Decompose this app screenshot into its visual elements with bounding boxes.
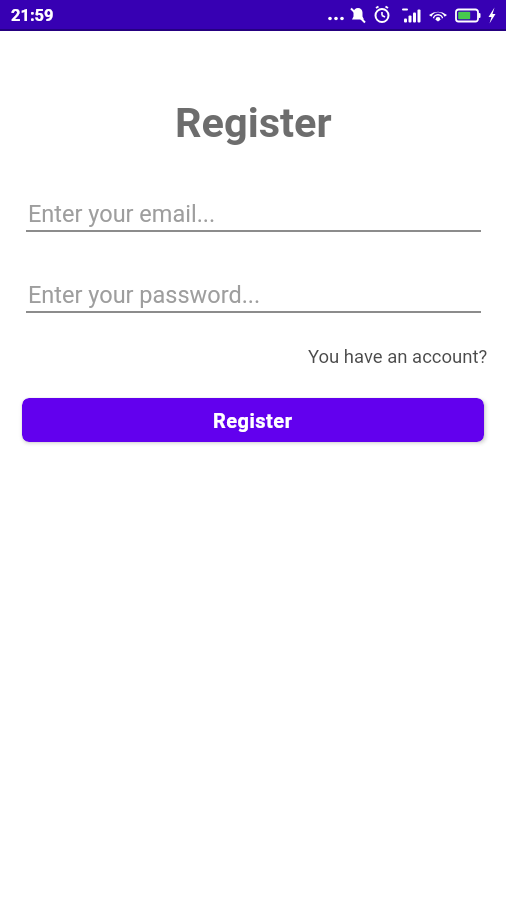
staticText: Enter your password... — [28, 281, 261, 309]
button[interactable]: Register — [22, 398, 484, 442]
staticText: 21:59 — [11, 6, 54, 25]
staticText: Enter your email... — [28, 200, 216, 228]
button[interactable]: Enter your password... — [26, 281, 481, 313]
button[interactable]: Enter your email... — [26, 200, 481, 232]
staticText: Register — [175, 98, 332, 147]
staticText: Register — [213, 409, 293, 432]
button[interactable]: You have an account? — [308, 346, 488, 368]
